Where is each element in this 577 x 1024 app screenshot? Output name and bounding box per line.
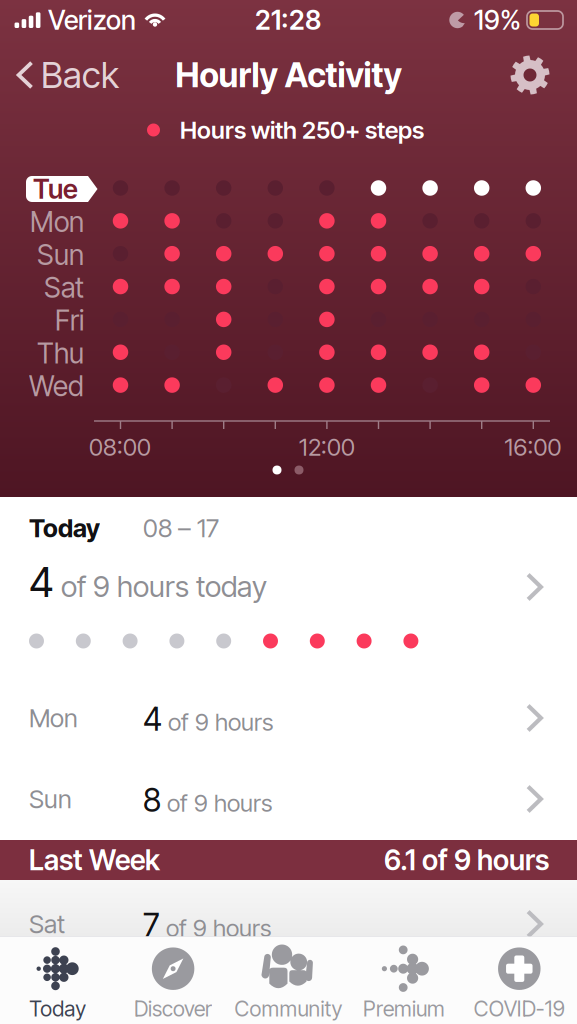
staticText: Mon bbox=[30, 205, 84, 239]
staticText: Community bbox=[234, 996, 342, 1022]
button[interactable]: Today bbox=[0, 497, 577, 677]
staticText: Sat bbox=[29, 909, 65, 939]
staticText: Last Week bbox=[29, 843, 160, 877]
staticText: Fri bbox=[55, 303, 84, 337]
staticText: Wed bbox=[29, 369, 84, 403]
staticText: 6.1 of 9 hours bbox=[384, 843, 549, 877]
button[interactable]: Discover bbox=[115, 937, 231, 1024]
staticText: Hours with 250+ steps bbox=[180, 115, 424, 144]
staticText: 8 bbox=[143, 781, 161, 819]
staticText: Sun bbox=[29, 784, 72, 814]
staticText: Discover bbox=[134, 996, 212, 1022]
staticText: Sat bbox=[44, 271, 84, 304]
staticText: 08 – 17 bbox=[143, 513, 219, 543]
button[interactable]: Community bbox=[231, 937, 346, 1024]
staticText: of 9 hours bbox=[168, 707, 273, 736]
staticText: of 9 hours bbox=[167, 788, 272, 817]
staticText: Sun bbox=[37, 238, 84, 272]
staticText: Hourly Activity bbox=[175, 55, 401, 95]
button[interactable]: COVID-19 bbox=[462, 937, 577, 1024]
staticText: Tue bbox=[33, 173, 78, 205]
button[interactable]: Today bbox=[0, 937, 115, 1024]
staticText: Mon bbox=[29, 703, 78, 733]
staticText: 12:00 bbox=[299, 432, 355, 461]
staticText: Thu bbox=[37, 336, 84, 370]
staticText: 4 bbox=[29, 557, 54, 607]
staticText: Verizon bbox=[48, 4, 136, 36]
staticText: 21:28 bbox=[255, 4, 321, 36]
staticText: 16:00 bbox=[504, 432, 561, 461]
button[interactable]: Mon bbox=[0, 677, 577, 758]
button[interactable]: Premium bbox=[346, 937, 462, 1024]
staticText: 4 bbox=[143, 700, 162, 738]
staticText: Premium bbox=[363, 996, 445, 1022]
button[interactable]: Sun bbox=[0, 758, 577, 839]
staticText: 7 bbox=[143, 906, 160, 944]
button[interactable]: Sat bbox=[0, 880, 577, 936]
button[interactable]: Settings bbox=[500, 47, 560, 103]
button[interactable]: Back bbox=[2, 47, 133, 103]
staticText: of 9 hours bbox=[166, 913, 271, 942]
staticText: Back bbox=[41, 53, 119, 97]
staticText: 19% bbox=[474, 4, 521, 36]
staticText: COVID-19 bbox=[474, 996, 565, 1022]
staticText: of 9 hours today bbox=[61, 569, 267, 604]
staticText: Today bbox=[29, 513, 100, 543]
staticText: 08:00 bbox=[89, 432, 151, 461]
staticText: Today bbox=[29, 996, 86, 1022]
